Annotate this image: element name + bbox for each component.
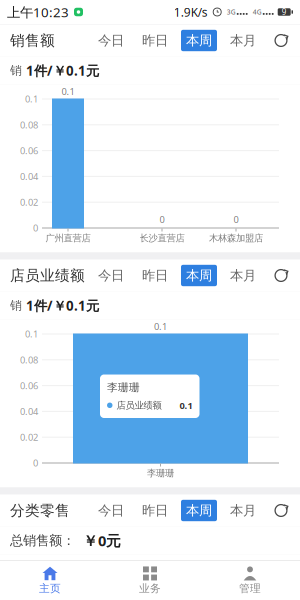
staticText: 4G bbox=[253, 8, 262, 16]
staticText: 本周 bbox=[186, 502, 212, 519]
staticText: 销 bbox=[10, 298, 22, 313]
staticText: 总销售额： bbox=[10, 532, 75, 549]
button[interactable]: 今日 bbox=[93, 500, 129, 521]
staticText: 3G bbox=[227, 8, 236, 16]
button[interactable]: 管理 bbox=[200, 561, 300, 600]
staticText: 李珊珊 bbox=[107, 381, 140, 394]
button[interactable]: 本周 bbox=[181, 265, 217, 286]
staticText: 0.1 bbox=[25, 328, 38, 340]
staticText: 长沙直营店 bbox=[139, 232, 184, 244]
button[interactable]: 本周 bbox=[181, 30, 217, 51]
staticText: 销售额 bbox=[10, 31, 55, 49]
button[interactable]: 今日 bbox=[93, 265, 129, 286]
staticText: 0.06 bbox=[20, 379, 38, 392]
staticText: 0 bbox=[233, 213, 238, 225]
button[interactable]: 昨日 bbox=[137, 500, 173, 521]
staticText: 店员业绩额 bbox=[116, 400, 161, 411]
button[interactable]: 昨日 bbox=[137, 265, 173, 286]
staticText: 1.9K/s bbox=[174, 4, 208, 20]
button[interactable]: 主页 bbox=[0, 561, 100, 600]
staticText: 0.02 bbox=[20, 196, 38, 208]
button[interactable]: 刷新 bbox=[274, 268, 288, 282]
button[interactable]: 刷新 bbox=[274, 33, 288, 47]
staticText: 本月 bbox=[230, 502, 256, 519]
staticText: 今日 bbox=[98, 267, 124, 284]
staticText: 0.04 bbox=[20, 405, 38, 418]
staticText: 管理 bbox=[239, 582, 261, 595]
staticText: 本月 bbox=[230, 267, 256, 284]
button[interactable]: 本月 bbox=[225, 500, 261, 521]
staticText: 木林森加盟店 bbox=[209, 232, 263, 244]
staticText: 分类零售 bbox=[10, 501, 70, 519]
staticText: 0.02 bbox=[20, 431, 38, 443]
button[interactable]: 今日 bbox=[93, 30, 129, 51]
staticText: 0.1 bbox=[179, 399, 192, 411]
staticText: 本月 bbox=[230, 32, 256, 49]
button[interactable]: 本周 bbox=[181, 500, 217, 521]
staticText: 昨日 bbox=[142, 502, 168, 519]
staticText: ￥0元 bbox=[83, 531, 121, 550]
staticText: 0.1 bbox=[25, 93, 38, 105]
button[interactable]: 业务 bbox=[100, 561, 200, 600]
staticText: 0 bbox=[33, 222, 38, 234]
staticText: 业务 bbox=[139, 582, 161, 595]
staticText: 0.1 bbox=[61, 85, 74, 98]
staticText: 今日 bbox=[98, 502, 124, 519]
staticText: 主页 bbox=[39, 582, 61, 595]
staticText: 9 bbox=[282, 7, 287, 17]
button[interactable]: 刷新 bbox=[274, 503, 288, 517]
staticText: 昨日 bbox=[142, 267, 168, 284]
staticText: 0.06 bbox=[20, 144, 38, 157]
staticText: 0 bbox=[159, 213, 164, 225]
staticText: 0.04 bbox=[20, 170, 38, 183]
staticText: 今日 bbox=[98, 32, 124, 49]
staticText: 本周 bbox=[186, 32, 212, 49]
button[interactable]: 本月 bbox=[225, 30, 261, 51]
staticText: 1件/￥0.1元 bbox=[26, 62, 99, 79]
staticText: 广州直营店 bbox=[45, 232, 90, 244]
staticText: 1件/￥0.1元 bbox=[26, 297, 99, 314]
staticText: 昨日 bbox=[142, 32, 168, 49]
staticText: 店员业绩额 bbox=[10, 266, 85, 284]
staticText: 本周 bbox=[186, 267, 212, 284]
staticText: 0.1 bbox=[154, 320, 167, 333]
button[interactable]: 本月 bbox=[225, 265, 261, 286]
staticText: 0.08 bbox=[20, 354, 38, 366]
staticText: 0 bbox=[33, 457, 38, 469]
button[interactable]: 昨日 bbox=[137, 30, 173, 51]
staticText: 0.08 bbox=[20, 119, 38, 131]
staticText: 销 bbox=[10, 63, 22, 78]
staticText: 李珊珊 bbox=[147, 467, 174, 479]
staticText: 上午10:23 bbox=[7, 3, 69, 21]
